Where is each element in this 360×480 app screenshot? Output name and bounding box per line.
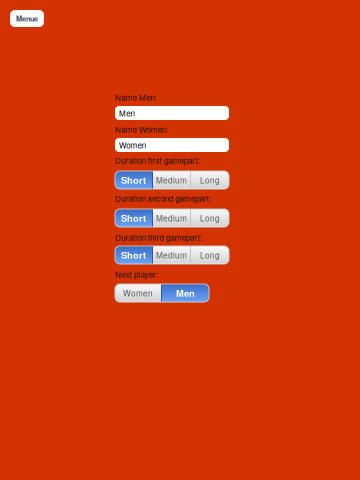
staticText: Duration third gamepart: <box>115 231 202 243</box>
staticText: Long <box>200 212 220 224</box>
button[interactable]: Short <box>115 171 152 189</box>
staticText: Long <box>200 174 220 186</box>
staticText: Short <box>121 211 146 225</box>
staticText: Medium <box>156 212 187 224</box>
button[interactable]: Medium <box>153 171 190 189</box>
staticText: Medium <box>156 249 187 261</box>
staticText: Next player: <box>115 268 158 280</box>
button[interactable]: Long <box>191 171 229 189</box>
staticText: Medium <box>156 174 187 186</box>
staticText: Short <box>121 173 146 187</box>
button[interactable]: Women <box>115 284 161 302</box>
button[interactable]: Long <box>191 246 229 264</box>
button[interactable]: Men <box>162 284 209 302</box>
button[interactable]: Short <box>115 209 152 227</box>
staticText: Menue <box>16 13 38 24</box>
staticText: Duration second gamepart: <box>115 192 211 204</box>
button[interactable]: Men <box>115 106 229 120</box>
staticText: Duration first gamepart: <box>115 154 200 166</box>
staticText: Long <box>200 249 220 261</box>
staticText: Women <box>123 287 153 299</box>
button[interactable]: Women <box>115 138 229 152</box>
staticText: Name Women: <box>115 123 168 135</box>
staticText: Men <box>176 286 195 300</box>
button[interactable]: Medium <box>153 246 190 264</box>
button[interactable]: Medium <box>153 209 190 227</box>
button[interactable]: Menue <box>10 10 44 27</box>
button[interactable]: Short <box>115 246 152 264</box>
button[interactable]: Long <box>191 209 229 227</box>
staticText: Name Men: <box>115 91 157 103</box>
staticText: Men <box>119 107 134 119</box>
staticText: Short <box>121 248 146 262</box>
staticText: Women <box>119 139 146 151</box>
